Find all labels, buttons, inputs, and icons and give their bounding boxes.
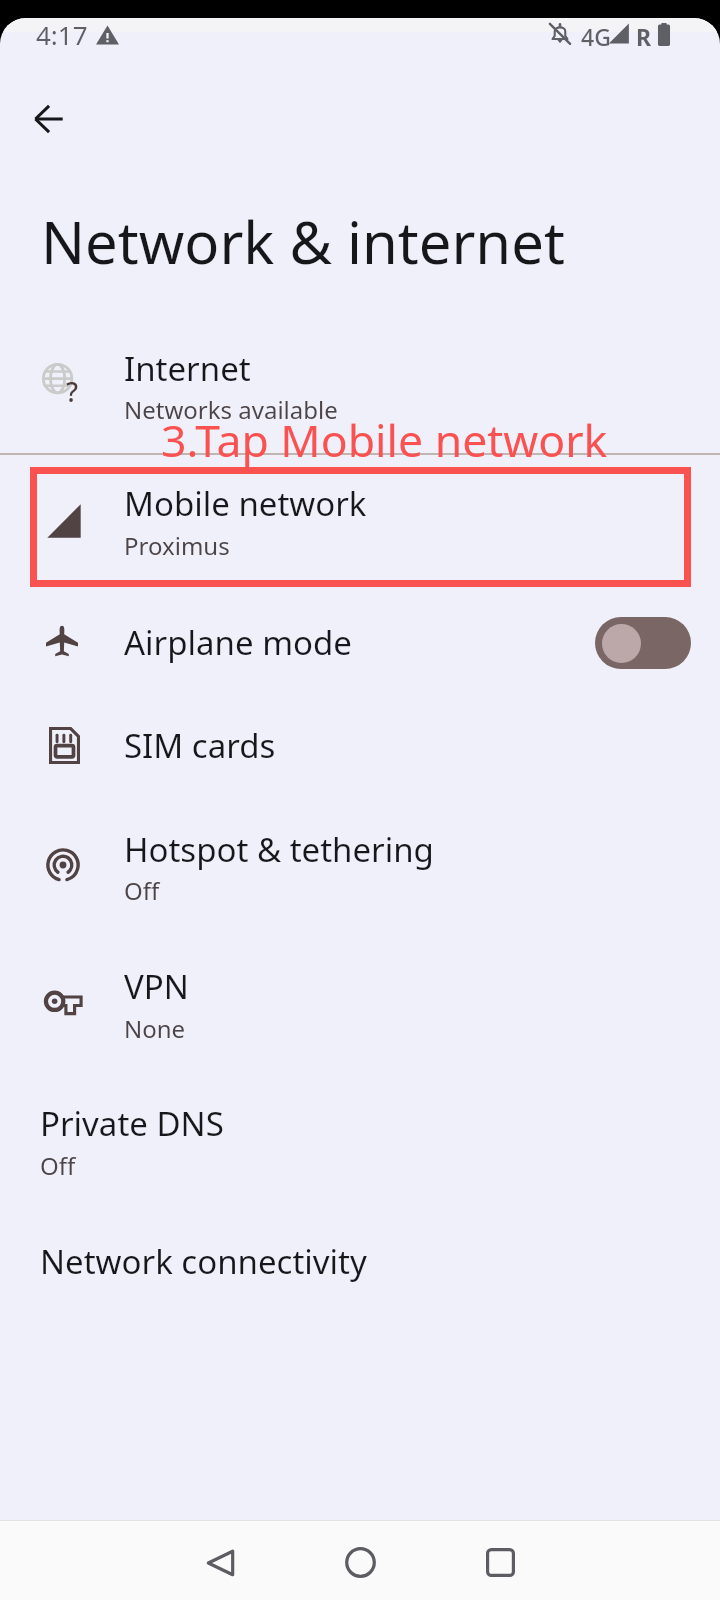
- staticText: R: [636, 21, 652, 52]
- button[interactable]: [0, 1093, 720, 1196]
- staticText: Network & internet: [41, 202, 565, 281]
- staticText: Hotspot & tethering: [124, 827, 434, 872]
- staticText: SIM cards: [124, 723, 276, 768]
- staticText: ?: [66, 373, 79, 410]
- staticText: 4G: [581, 21, 611, 52]
- button[interactable]: [0, 819, 720, 922]
- button[interactable]: [0, 592, 720, 695]
- button[interactable]: [0, 338, 720, 441]
- staticText: None: [124, 1012, 186, 1045]
- button[interactable]: Back: [172, 1523, 268, 1600]
- staticText: Network connectivity: [40, 1239, 367, 1284]
- staticText: Proximus: [124, 529, 230, 562]
- staticText: 4:17: [36, 18, 88, 52]
- button[interactable]: [0, 473, 720, 576]
- button[interactable]: [0, 956, 720, 1059]
- staticText: Mobile network: [124, 481, 367, 526]
- staticText: Off: [124, 874, 160, 907]
- staticText: Internet: [124, 346, 251, 391]
- button[interactable]: [0, 695, 720, 798]
- staticText: Private DNS: [40, 1101, 224, 1146]
- button[interactable]: Home: [312, 1523, 408, 1600]
- button[interactable]: [0, 1211, 720, 1314]
- button[interactable]: Back: [12, 83, 84, 155]
- staticText: 3.Tap Mobile network: [161, 409, 608, 470]
- staticText: Airplane mode: [124, 620, 352, 665]
- staticText: Off: [40, 1149, 76, 1182]
- button[interactable]: Recent apps: [452, 1523, 548, 1600]
- staticText: Networks available: [124, 393, 338, 426]
- staticText: VPN: [124, 964, 189, 1009]
- button[interactable]: Airplane mode toggle: [595, 617, 691, 669]
